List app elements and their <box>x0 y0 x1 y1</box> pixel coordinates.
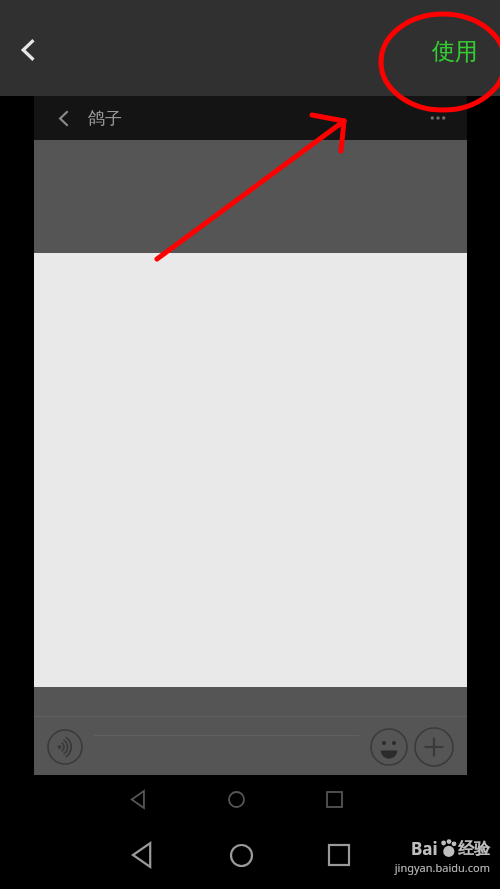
button[interactable]: Back <box>116 777 160 821</box>
button[interactable]: Home <box>214 777 258 821</box>
button[interactable]: 使用 <box>410 25 500 78</box>
staticText: 使用 <box>432 37 478 66</box>
staticText: jingyan.baidu.com <box>394 860 490 875</box>
button[interactable]: Home <box>216 830 266 880</box>
button[interactable]: Add <box>413 726 455 768</box>
button[interactable]: Back <box>0 22 56 78</box>
button[interactable]: Back <box>118 830 168 880</box>
button[interactable]: Back <box>48 103 78 133</box>
button[interactable]: More options <box>423 103 453 133</box>
button[interactable]: Emoji <box>369 727 409 767</box>
button[interactable]: Recent apps <box>314 830 364 880</box>
button[interactable]: Voice input <box>46 728 84 766</box>
button[interactable]: Recent apps <box>312 777 356 821</box>
staticText: 经验 <box>458 839 490 859</box>
staticText: Bai <box>411 837 438 860</box>
staticText: 鸽子 <box>88 108 122 129</box>
